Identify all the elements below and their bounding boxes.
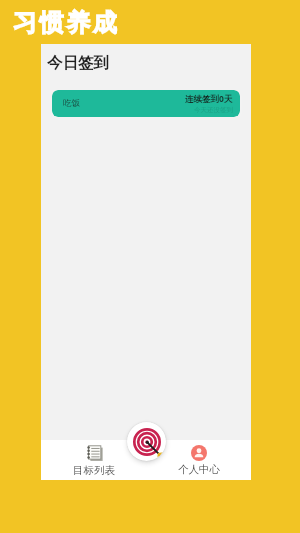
staticText: 个人中心 (178, 463, 220, 476)
staticText: 吃饭 (63, 98, 80, 109)
button[interactable]: 目标列表 (41, 440, 146, 480)
button[interactable]: 个人中心 (146, 440, 251, 480)
staticText: 习惯养成 (13, 8, 120, 38)
staticText: 连续签到0天 (185, 93, 233, 105)
button[interactable]: Add new habit (127, 422, 166, 461)
button[interactable]: 吃饭 (52, 90, 240, 117)
staticText: 今日签到 (47, 53, 109, 73)
staticText: 今天还没签到 (194, 106, 233, 114)
staticText: 目标列表 (73, 464, 115, 477)
